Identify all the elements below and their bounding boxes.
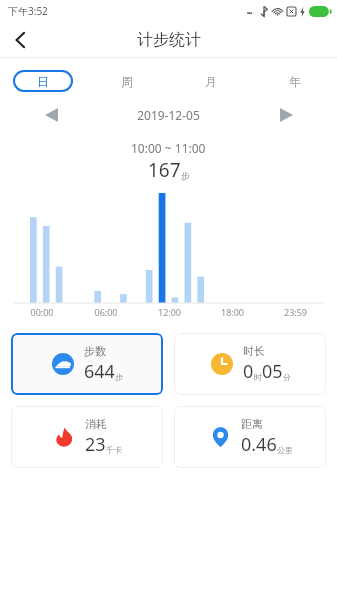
staticText: 公里 (277, 445, 293, 455)
staticText: 06:00 (74, 306, 138, 318)
button[interactable]: 时长 (174, 333, 326, 395)
staticText: 日 (37, 74, 49, 89)
staticText: 分 (283, 372, 291, 382)
button[interactable]: 距离 (174, 406, 326, 468)
staticText: 18:00 (201, 306, 264, 318)
staticText: 年 (289, 74, 301, 89)
button[interactable]: 年 (253, 68, 337, 94)
staticText: 644 (84, 359, 115, 384)
button[interactable]: 月 (169, 68, 253, 94)
staticText: 0 (243, 359, 254, 384)
button[interactable]: Previous day (38, 102, 64, 128)
staticText: 步数 (84, 344, 106, 358)
button[interactable]: 日 (0, 68, 85, 94)
staticText: 步 (115, 372, 123, 382)
staticText: 距离 (241, 417, 263, 431)
staticText: 下午3:52 (8, 4, 48, 18)
staticText: 千卡 (106, 445, 122, 455)
staticText: 消耗 (85, 417, 107, 431)
button[interactable]: 步数 (11, 333, 163, 395)
staticText: 23 (85, 432, 106, 457)
staticText: 计步统计 (137, 30, 201, 50)
staticText: 05 (262, 359, 283, 384)
staticText: 10:00 ~ 11:00 (131, 140, 206, 156)
staticText: 月 (205, 74, 217, 89)
staticText: 00:00 (10, 306, 74, 318)
button[interactable]: 周 (85, 68, 169, 94)
button[interactable]: Next day (273, 102, 299, 128)
staticText: 时长 (243, 344, 265, 358)
staticText: 167 (148, 157, 181, 183)
staticText: 时 (254, 372, 262, 382)
staticText: 2019-12-05 (64, 107, 273, 123)
staticText: 0.46 (241, 432, 277, 457)
staticText: 周 (121, 74, 133, 89)
button[interactable]: Back (0, 22, 40, 58)
button[interactable]: 消耗 (11, 406, 163, 468)
staticText: 23:59 (264, 306, 327, 318)
staticText: 步 (181, 170, 190, 181)
staticText: 12:00 (138, 306, 201, 318)
